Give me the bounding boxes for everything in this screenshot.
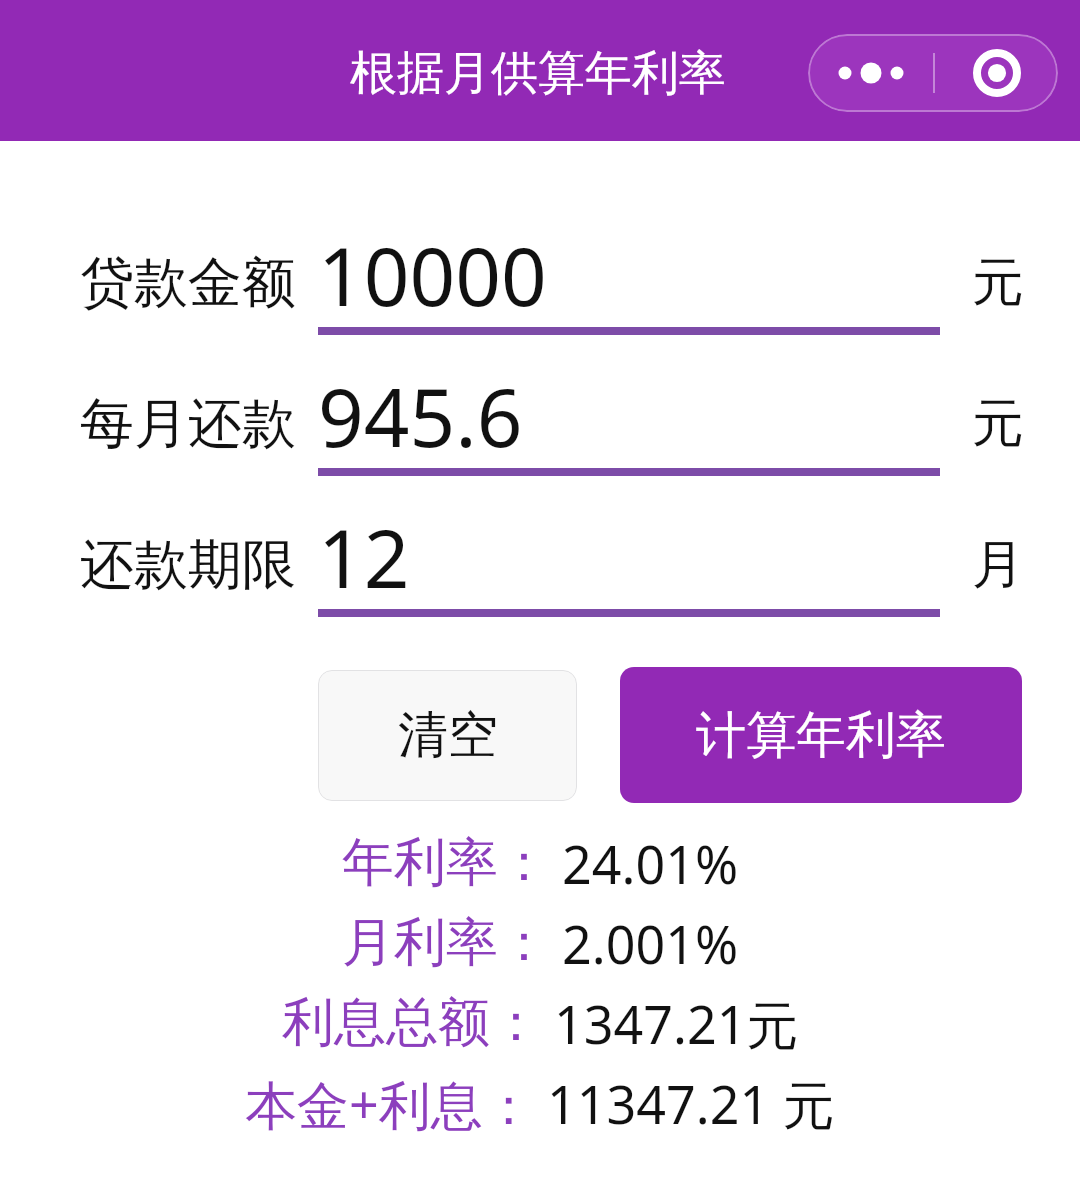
staticText: 11347.21 元: [547, 1068, 835, 1139]
staticText: 10000: [318, 220, 547, 329]
staticText: 根据月供算年利率: [350, 44, 726, 103]
button[interactable]: 每月还款: [0, 361, 1080, 502]
staticText: 每月还款: [80, 390, 296, 458]
staticText: 计算年利率: [696, 704, 946, 767]
staticText: 元: [972, 391, 1024, 457]
staticText: 2.001%: [562, 908, 739, 979]
staticText: 清空: [398, 704, 498, 767]
button[interactable]: More options: [808, 34, 933, 112]
staticText: 年利率：: [342, 830, 550, 896]
staticText: 月: [972, 532, 1024, 598]
button[interactable]: 本金+利息：: [0, 1063, 1080, 1143]
staticText: 元: [972, 250, 1024, 316]
staticText: 1347.21元: [554, 988, 799, 1059]
button[interactable]: 贷款金额: [0, 220, 1080, 361]
staticText: 利息总额：: [282, 990, 542, 1056]
button[interactable]: 利息总额：: [0, 983, 1080, 1063]
staticText: 12: [318, 502, 410, 611]
button[interactable]: 清空: [318, 670, 577, 801]
staticText: 945.6: [318, 361, 523, 470]
button[interactable]: Close mini program: [935, 34, 1058, 112]
staticText: 本金+利息：: [245, 1068, 535, 1139]
staticText: 贷款金额: [80, 249, 296, 317]
button[interactable]: 年利率：: [0, 823, 1080, 903]
button[interactable]: 还款期限: [0, 502, 1080, 643]
button[interactable]: 月利率：: [0, 903, 1080, 983]
staticText: 月利率：: [342, 910, 550, 976]
staticText: 24.01%: [562, 828, 739, 899]
staticText: 还款期限: [80, 531, 296, 599]
button[interactable]: 计算年利率: [620, 667, 1022, 803]
